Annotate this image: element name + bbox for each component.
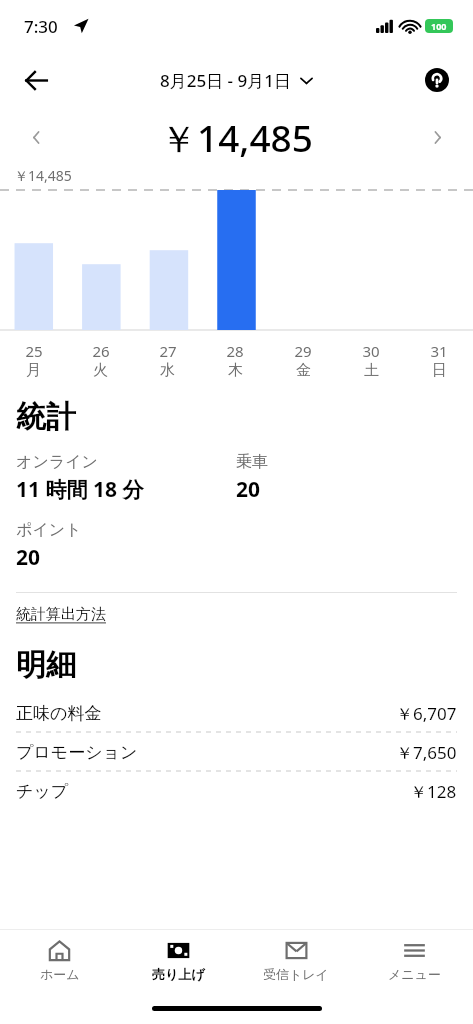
- staticText: 明細: [16, 646, 76, 684]
- staticText: 金: [296, 361, 311, 380]
- staticText: ポイント: [16, 520, 82, 540]
- staticText: 日: [432, 361, 447, 380]
- staticText: 木: [228, 361, 243, 380]
- button[interactable]: Back: [14, 58, 58, 102]
- staticText: 11 時間 18 分: [16, 475, 144, 504]
- staticText: ￥6,707: [396, 702, 457, 725]
- staticText: 受信トレイ: [263, 966, 329, 982]
- staticText: ￥128: [410, 780, 457, 803]
- button[interactable]: メニュー: [355, 930, 473, 992]
- staticText: メニュー: [388, 966, 441, 982]
- button[interactable]: プロモーション: [16, 733, 457, 771]
- button[interactable]: 26: [67, 341, 134, 380]
- button[interactable]: 受信トレイ: [237, 930, 355, 992]
- staticText: 7:30: [24, 15, 58, 38]
- staticText: チップ: [16, 781, 69, 802]
- staticText: 30: [362, 341, 380, 361]
- staticText: オンライン: [16, 452, 98, 472]
- staticText: 8月25日 - 9月1日: [160, 69, 291, 92]
- staticText: 水: [160, 361, 175, 380]
- button[interactable]: 27: [134, 341, 201, 380]
- staticText: ￥14,485: [14, 166, 72, 185]
- staticText: 統計: [16, 398, 76, 436]
- staticText: 25: [25, 341, 43, 361]
- button[interactable]: 統計算出方法: [16, 605, 106, 624]
- staticText: 乗車: [236, 452, 268, 472]
- staticText: 29: [294, 341, 312, 361]
- button[interactable]: チップ: [16, 772, 457, 810]
- button[interactable]: 8月25日 - 9月1日: [160, 69, 313, 92]
- staticText: プロモーション: [16, 742, 138, 763]
- staticText: 26: [92, 341, 110, 361]
- staticText: 月: [26, 361, 41, 380]
- staticText: ￥14,485: [160, 112, 313, 163]
- staticText: 28: [226, 341, 244, 361]
- button[interactable]: 28: [201, 341, 269, 380]
- staticText: 100: [431, 20, 447, 32]
- staticText: 火: [93, 361, 108, 380]
- staticText: 20: [236, 475, 261, 504]
- staticText: 31: [430, 341, 448, 361]
- button[interactable]: 30: [337, 341, 405, 380]
- staticText: ホーム: [40, 966, 80, 982]
- button[interactable]: 売り上げ: [119, 930, 237, 992]
- button[interactable]: 29: [269, 341, 337, 380]
- button[interactable]: 31: [405, 341, 473, 380]
- staticText: ￥7,650: [396, 741, 457, 764]
- button[interactable]: Help: [415, 58, 459, 102]
- staticText: 売り上げ: [152, 966, 205, 982]
- button[interactable]: 正味の料金: [16, 694, 457, 732]
- staticText: 土: [364, 361, 379, 380]
- staticText: 20: [16, 543, 41, 572]
- button[interactable]: Previous week: [16, 117, 56, 157]
- staticText: 27: [159, 341, 177, 361]
- button[interactable]: 25: [0, 341, 67, 380]
- staticText: 正味の料金: [16, 703, 102, 724]
- button[interactable]: ホーム: [0, 930, 119, 992]
- button[interactable]: Next week: [417, 117, 457, 157]
